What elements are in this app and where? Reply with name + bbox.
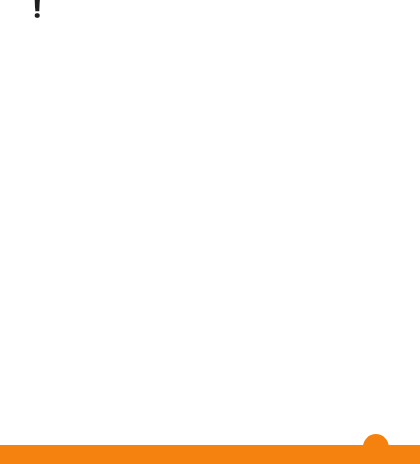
staticText: ! [34,0,42,25]
button[interactable]: Add [362,433,390,461]
